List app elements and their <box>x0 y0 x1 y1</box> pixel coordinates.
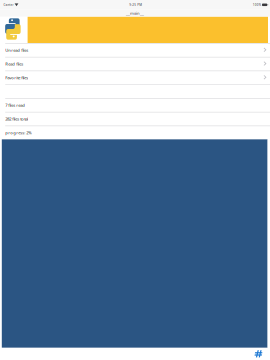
button[interactable]: Read files <box>0 57 270 71</box>
staticText: __main__ <box>126 10 144 16</box>
staticText: 9:25 PM <box>129 3 142 7</box>
staticText: 7 files read <box>5 102 25 108</box>
button[interactable]: Unread files <box>0 43 270 57</box>
staticText: Carrier <box>4 3 14 7</box>
staticText: Unread files <box>5 47 28 53</box>
staticText: Read files <box>5 61 23 67</box>
button[interactable]: Keyboard <box>253 348 264 359</box>
staticText: Favorite files <box>5 75 28 80</box>
staticText: progress: 2% <box>5 130 31 135</box>
button[interactable]: Favorite files <box>0 71 270 84</box>
staticText: 100% <box>253 3 261 7</box>
staticText: 282 files total <box>5 116 28 122</box>
